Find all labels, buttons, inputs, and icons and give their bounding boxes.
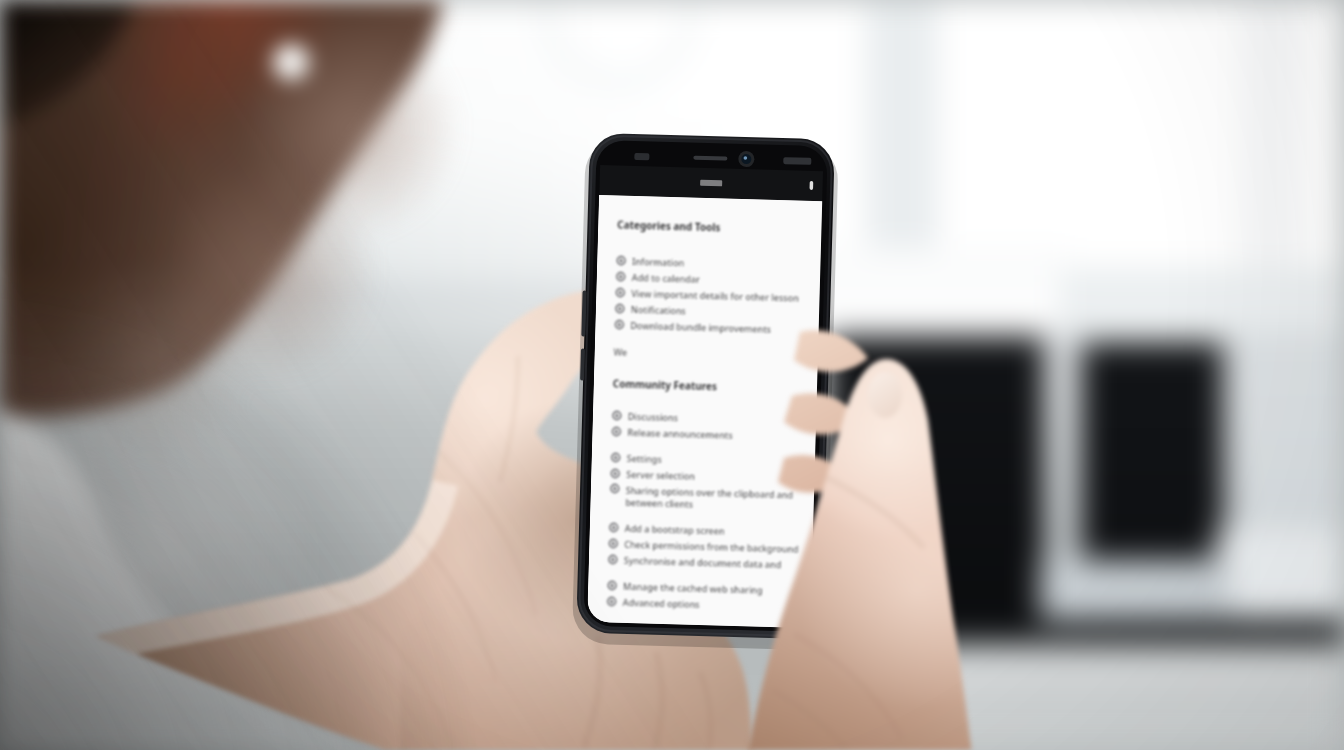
staticText: Release announcements <box>627 426 733 441</box>
staticText: Manage the cached web sharing <box>623 580 763 596</box>
button[interactable]: Download bundle improvements <box>614 318 808 336</box>
staticText: Discussions <box>628 410 679 423</box>
staticText: Community Features <box>613 376 718 393</box>
button[interactable]: Release announcements <box>611 425 805 443</box>
staticText: Check permissions from the background se… <box>624 538 802 555</box>
staticText: Settings <box>626 452 663 465</box>
staticText: View important details for other lesson … <box>631 287 809 304</box>
button[interactable]: Add to calendar <box>616 270 810 288</box>
button[interactable]: Advanced options <box>606 595 801 613</box>
button[interactable]: Synchronise and document data and metada… <box>608 553 802 571</box>
button[interactable]: Discussions <box>612 409 806 427</box>
button[interactable]: Check permissions from the background se… <box>608 537 802 555</box>
staticText: Information <box>632 255 685 268</box>
staticText: Categories and Tools <box>617 217 721 234</box>
staticText: Server selection <box>626 468 695 482</box>
button[interactable]: Manage the cached web sharing <box>607 579 801 597</box>
staticText: Add to calendar <box>632 271 701 285</box>
staticText: Add a bootstrap screen <box>625 522 725 537</box>
button[interactable]: Phone screen <box>0 0 1344 750</box>
button[interactable]: View important details for other lesson … <box>615 286 809 304</box>
button[interactable]: Sharing options over the clipboard and b… <box>609 483 804 513</box>
button[interactable]: Add a bootstrap screen <box>609 521 803 539</box>
staticText: Notifications <box>631 303 686 316</box>
staticText: Advanced options <box>622 596 700 610</box>
button[interactable]: Information <box>616 254 810 272</box>
button[interactable]: Settings <box>610 451 805 469</box>
button[interactable]: Notifications <box>615 302 809 320</box>
staticText: Sharing options over the clipboard and b… <box>625 484 804 513</box>
staticText: Download bundle improvements <box>630 319 771 335</box>
button[interactable]: Server selection <box>610 467 804 485</box>
staticText: We <box>613 345 628 358</box>
staticText: Synchronise and document data and metada… <box>624 554 802 571</box>
